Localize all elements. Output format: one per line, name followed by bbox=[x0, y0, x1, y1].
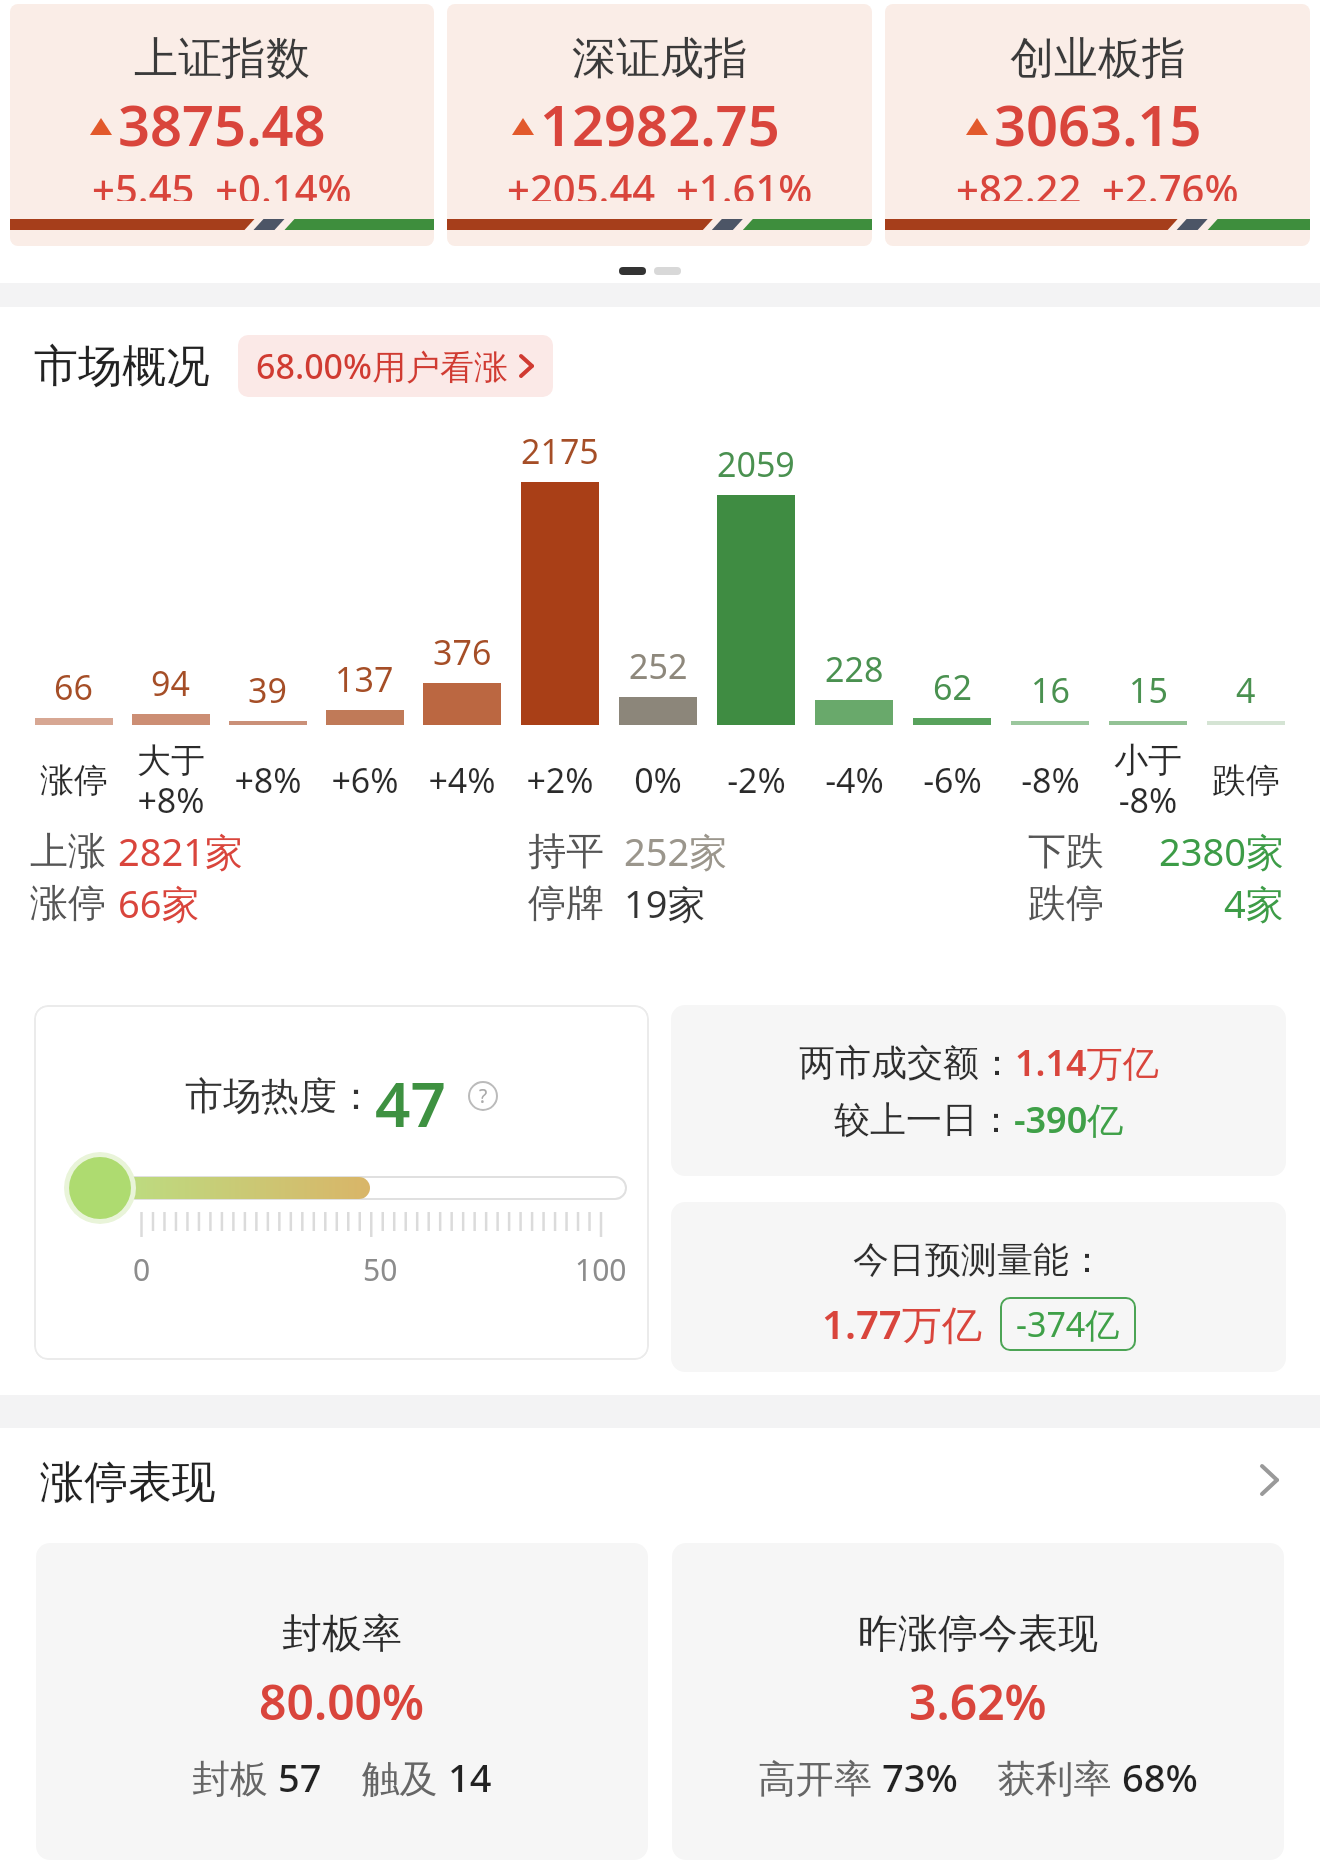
staticText: -4% bbox=[825, 757, 884, 803]
staticText: 19家 bbox=[624, 877, 706, 929]
staticText: 较上一日： bbox=[834, 1097, 1014, 1142]
staticText: -374亿 bbox=[1016, 1301, 1120, 1347]
staticText: 68.00%用户看涨 bbox=[256, 343, 509, 389]
staticText: 跌停 bbox=[1028, 879, 1104, 927]
staticText: 涨停表现 bbox=[40, 1455, 216, 1505]
staticText: 50 bbox=[363, 1249, 398, 1285]
button[interactable]: 深证成指 bbox=[447, 4, 872, 246]
staticText: 创业板指 bbox=[1010, 31, 1186, 86]
button[interactable]: 今日预测量能： bbox=[671, 1202, 1286, 1372]
staticText: 14 bbox=[448, 1751, 492, 1803]
staticText: -390亿 bbox=[1014, 1095, 1124, 1144]
staticText: 4家 bbox=[1224, 877, 1284, 929]
staticText: +8% bbox=[234, 757, 302, 803]
staticText: 市场概况 bbox=[34, 339, 210, 394]
staticText: 39 bbox=[248, 667, 287, 713]
staticText: 68% bbox=[1122, 1751, 1198, 1803]
button[interactable]: 市场热度： bbox=[34, 1005, 649, 1360]
staticText: 252 bbox=[629, 643, 688, 689]
staticText: 94 bbox=[151, 660, 190, 706]
staticText: 47 bbox=[375, 1061, 446, 1131]
staticText: 昨涨停今表现 bbox=[858, 1608, 1098, 1658]
staticText: 3063.15 bbox=[994, 86, 1202, 158]
staticText: 今日预测量能： bbox=[853, 1237, 1105, 1282]
staticText: 深证成指 bbox=[572, 31, 748, 86]
staticText: 2380家 bbox=[1159, 825, 1284, 877]
staticText: +2% bbox=[526, 757, 594, 803]
staticText: 触及 bbox=[322, 1751, 448, 1803]
staticText: 16 bbox=[1031, 667, 1070, 713]
staticText: +82.22 +2.76% bbox=[956, 161, 1239, 201]
staticText: 大于 +8% bbox=[137, 739, 205, 821]
staticText: 2175 bbox=[521, 428, 599, 474]
staticText: +6% bbox=[331, 757, 399, 803]
staticText: 小于 -8% bbox=[1114, 739, 1182, 821]
button[interactable]: 创业板指 bbox=[885, 4, 1310, 246]
staticText: 66家 bbox=[118, 877, 200, 929]
staticText: 涨停 bbox=[30, 879, 106, 927]
staticText: ? bbox=[479, 1083, 488, 1109]
staticText: 1.77万亿 bbox=[822, 1296, 982, 1351]
staticText: -6% bbox=[923, 757, 982, 803]
staticText: 80.00% bbox=[259, 1669, 425, 1731]
staticText: 57 bbox=[278, 1751, 322, 1803]
staticText: 0% bbox=[634, 757, 682, 803]
staticText: 获利率 bbox=[958, 1751, 1122, 1803]
staticText: +205.44 +1.61% bbox=[507, 161, 813, 201]
staticText: 15 bbox=[1129, 667, 1168, 713]
button[interactable]: 涨停表现 bbox=[0, 1455, 1320, 1505]
staticText: 228 bbox=[825, 646, 884, 692]
staticText: 上证指数 bbox=[134, 31, 310, 86]
button[interactable]: 两市成交额： bbox=[671, 1005, 1286, 1176]
staticText: 62 bbox=[933, 664, 972, 710]
staticText: 跌停 bbox=[1212, 759, 1280, 802]
staticText: 376 bbox=[433, 629, 492, 675]
button[interactable]: 68.00%用户看涨 bbox=[238, 335, 553, 397]
staticText: 上涨 bbox=[30, 827, 106, 875]
staticText: +4% bbox=[428, 757, 496, 803]
staticText: 封板率 bbox=[282, 1608, 402, 1658]
staticText: 涨停 bbox=[40, 759, 108, 802]
staticText: 3.62% bbox=[909, 1669, 1047, 1731]
staticText: 73% bbox=[882, 1751, 958, 1803]
staticText: 100 bbox=[575, 1249, 627, 1285]
staticText: 2059 bbox=[717, 441, 795, 487]
staticText: 1.14万亿 bbox=[1015, 1038, 1159, 1087]
staticText: 0 bbox=[133, 1249, 151, 1285]
staticText: -2% bbox=[727, 757, 786, 803]
staticText: 持平 bbox=[528, 827, 604, 875]
staticText: 停牌 bbox=[528, 879, 604, 927]
staticText: 两市成交额： bbox=[799, 1040, 1015, 1085]
staticText: 高开率 bbox=[758, 1751, 882, 1803]
staticText: 137 bbox=[335, 656, 394, 702]
staticText: +5.45 +0.14% bbox=[92, 161, 352, 201]
staticText: 3875.48 bbox=[118, 86, 326, 158]
staticText: 12982.75 bbox=[540, 86, 780, 158]
staticText: 4 bbox=[1236, 667, 1256, 713]
staticText: 252家 bbox=[624, 825, 728, 877]
staticText: 封板 bbox=[192, 1751, 278, 1803]
staticText: 2821家 bbox=[118, 825, 243, 877]
staticText: 市场热度： bbox=[185, 1072, 375, 1120]
staticText: 下跌 bbox=[1028, 827, 1104, 875]
staticText: -8% bbox=[1021, 757, 1080, 803]
staticText: 66 bbox=[54, 664, 93, 710]
button[interactable]: 上证指数 bbox=[10, 4, 434, 246]
button[interactable]: 封板率 bbox=[36, 1543, 648, 1860]
button[interactable]: 昨涨停今表现 bbox=[672, 1543, 1284, 1860]
